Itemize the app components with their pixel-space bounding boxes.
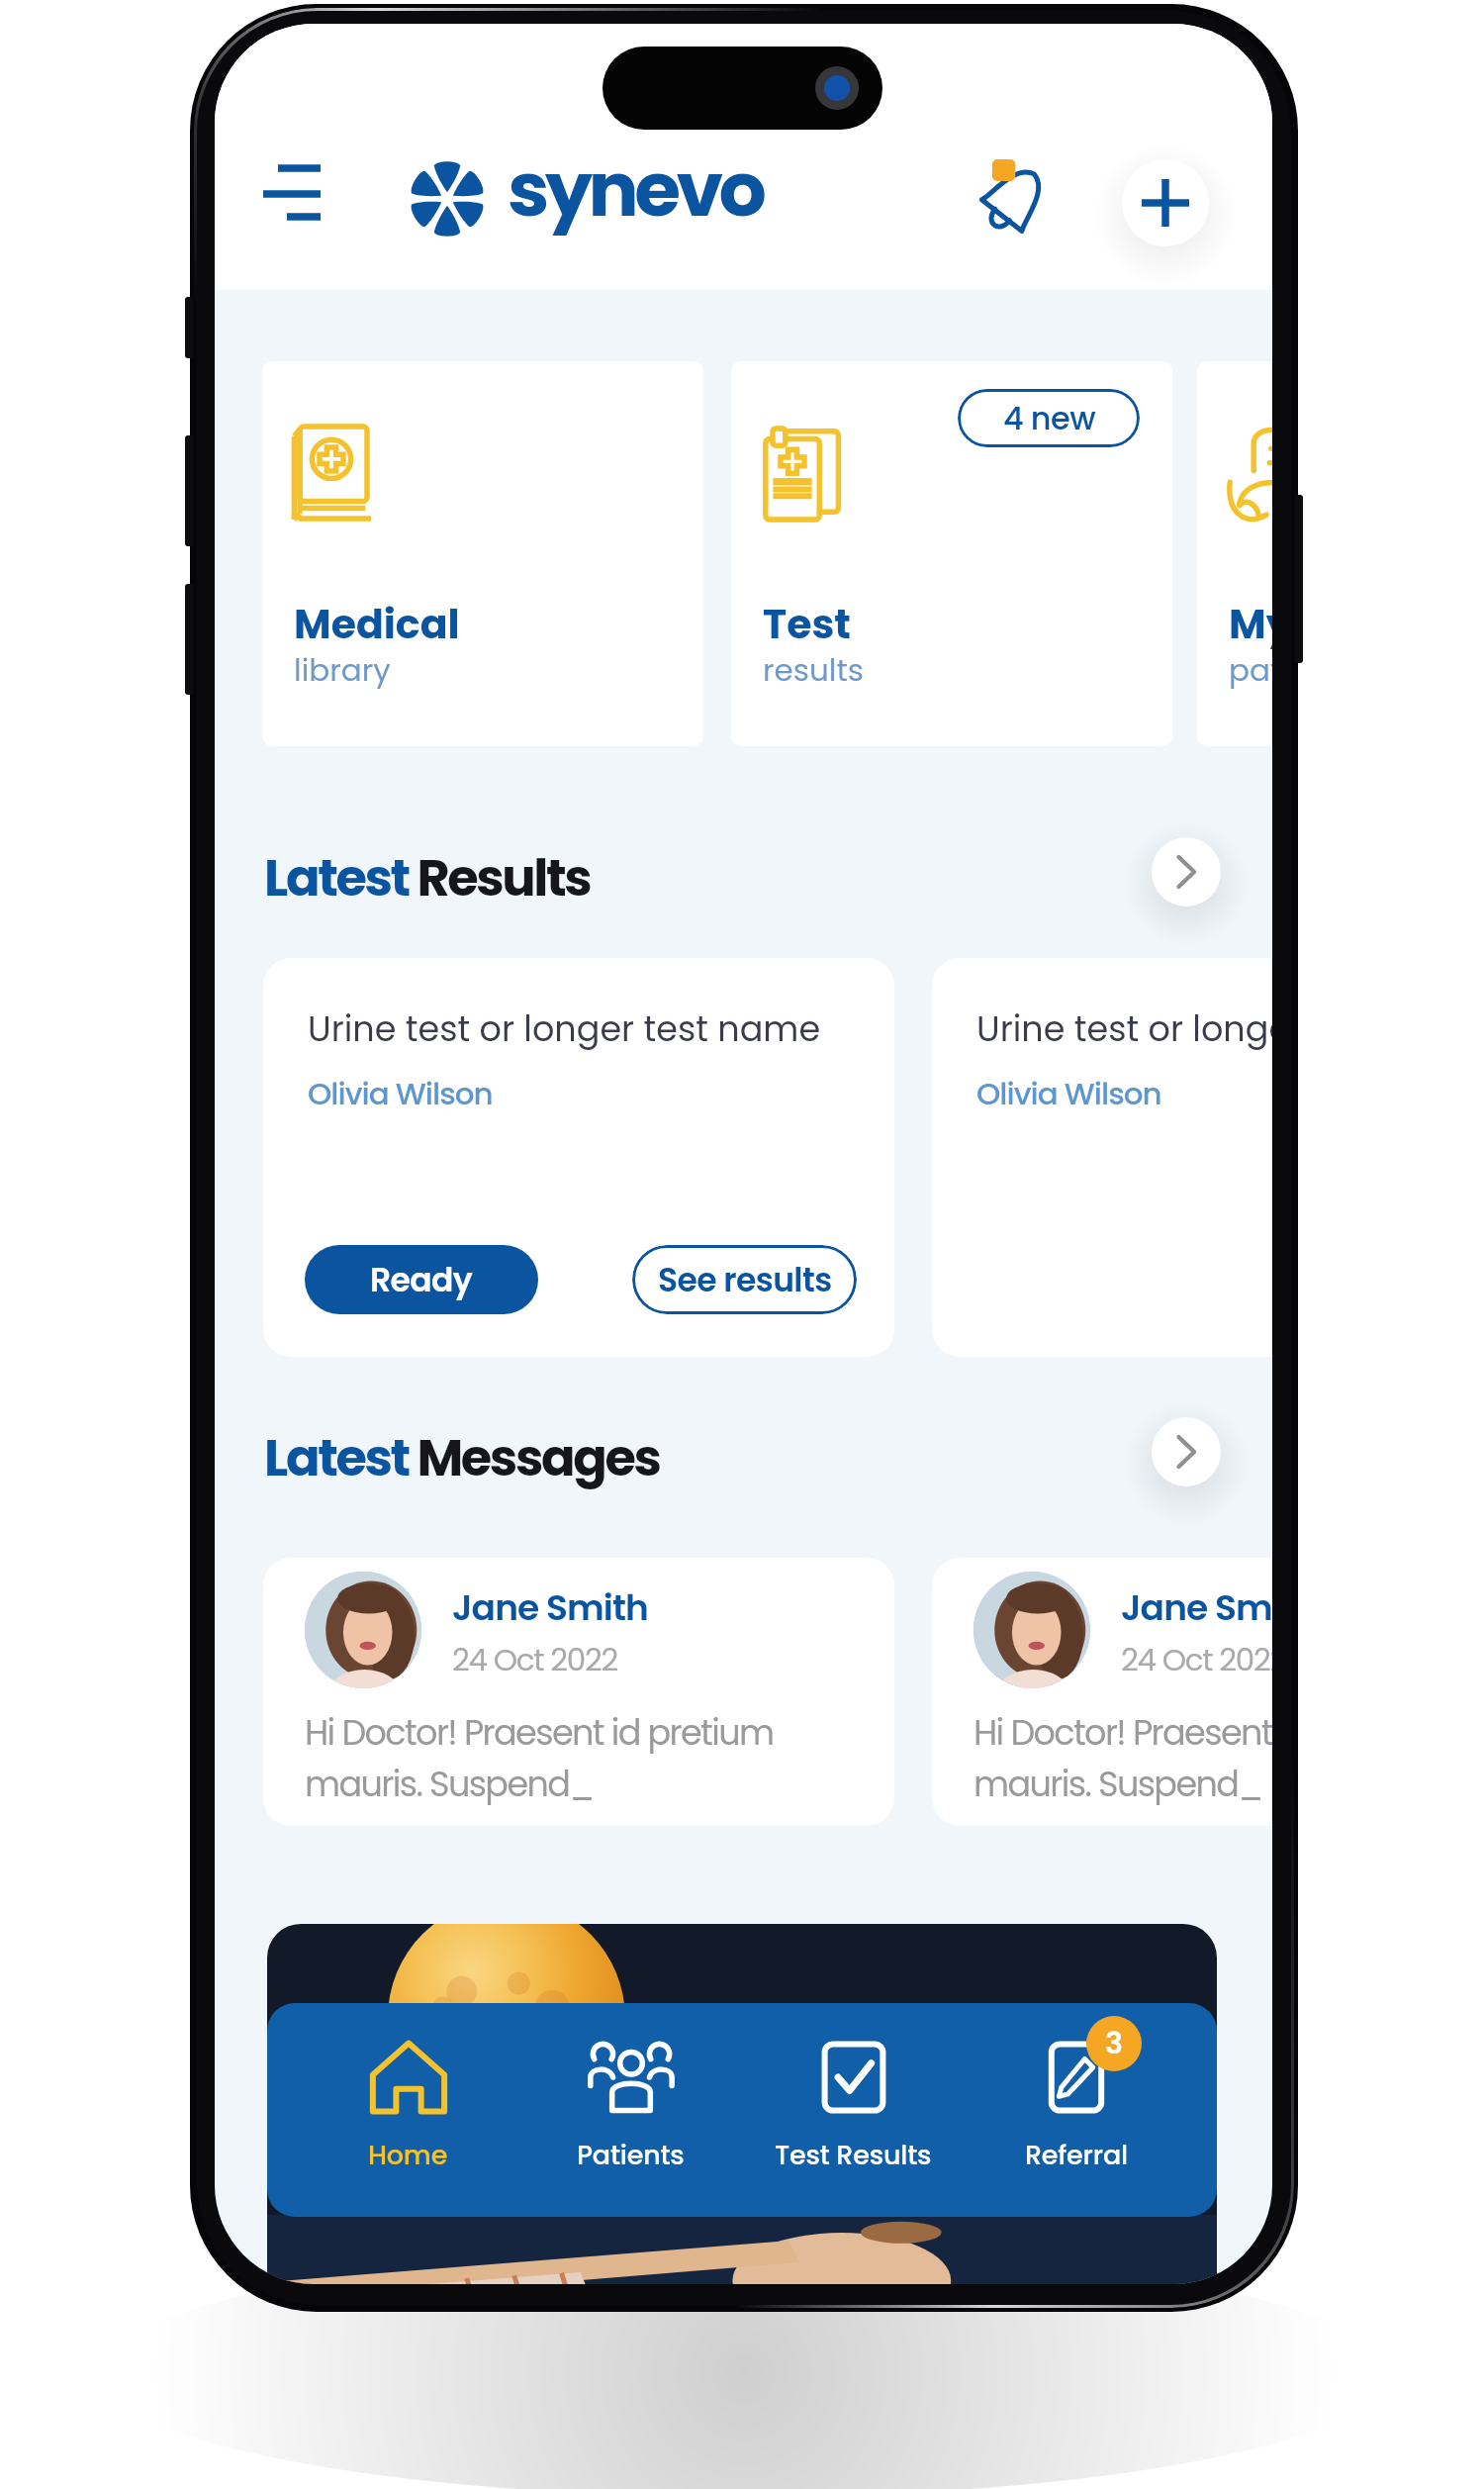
staticText: Latest bbox=[264, 1422, 409, 1492]
staticText: Messages bbox=[409, 1422, 660, 1492]
button[interactable]: Jane Smith bbox=[263, 1558, 894, 1826]
button[interactable]: 3 bbox=[965, 2003, 1187, 2217]
button[interactable]: My bbox=[1197, 361, 1272, 746]
button[interactable]: 4 new bbox=[958, 389, 1140, 447]
staticText: synevo bbox=[508, 137, 763, 241]
button[interactable]: Add bbox=[1122, 159, 1209, 246]
staticText: Hi Doctor! Praesent id pretium mauris. S… bbox=[974, 1708, 1272, 1808]
staticText: Urine test or longer test name bbox=[976, 1005, 1272, 1053]
button[interactable]: 4 new bbox=[731, 361, 1172, 746]
staticText: 3 bbox=[1105, 2023, 1123, 2064]
button[interactable]: Patients bbox=[519, 2003, 742, 2217]
staticText: Urine test or longer test name bbox=[308, 1005, 821, 1053]
staticText: Olivia Wilson bbox=[976, 1072, 1161, 1114]
staticText: library bbox=[294, 648, 391, 691]
staticText: Hi Doctor! Praesent id pretium mauris. S… bbox=[305, 1708, 774, 1808]
button[interactable]: Medical bbox=[262, 361, 703, 746]
staticText: See results bbox=[658, 1257, 832, 1302]
staticText: Referral bbox=[1025, 2137, 1128, 2174]
staticText: pat bbox=[1229, 648, 1272, 691]
staticText: Test bbox=[763, 596, 852, 652]
staticText: Patients bbox=[577, 2137, 685, 2174]
staticText: My bbox=[1229, 596, 1272, 652]
staticText: Test Results bbox=[775, 2137, 932, 2174]
button[interactable]: Urine test or longer test name bbox=[932, 958, 1272, 1357]
staticText: Ready bbox=[370, 1257, 473, 1302]
staticText: Olivia Wilson bbox=[308, 1072, 493, 1114]
button[interactable]: Urine test or longer test name bbox=[263, 958, 894, 1357]
staticText: Results bbox=[409, 842, 591, 912]
button[interactable]: Notifications bbox=[973, 153, 1050, 245]
staticText: 4 new bbox=[1003, 396, 1095, 440]
staticText: Home bbox=[368, 2137, 448, 2174]
button[interactable]: Jane Smith bbox=[932, 1558, 1272, 1826]
staticText: 24 Oct 2022 bbox=[1121, 1638, 1272, 1680]
staticText: results bbox=[763, 648, 864, 691]
button[interactable]: Menu bbox=[244, 141, 339, 255]
button[interactable]: See all bbox=[1152, 1417, 1221, 1486]
button[interactable]: See results bbox=[632, 1245, 857, 1314]
button[interactable]: Ready bbox=[305, 1245, 538, 1314]
staticText: Medical bbox=[294, 596, 460, 652]
staticText: Latest bbox=[264, 842, 409, 912]
staticText: Jane Smith bbox=[452, 1582, 648, 1632]
staticText: Jane Smith bbox=[1121, 1582, 1272, 1632]
staticText: 24 Oct 2022 bbox=[452, 1638, 617, 1680]
button[interactable]: Home bbox=[297, 2003, 519, 2217]
button[interactable]: See all bbox=[1152, 837, 1221, 907]
button[interactable]: Synevo home bbox=[409, 158, 486, 239]
button[interactable]: Test Results bbox=[742, 2003, 965, 2217]
